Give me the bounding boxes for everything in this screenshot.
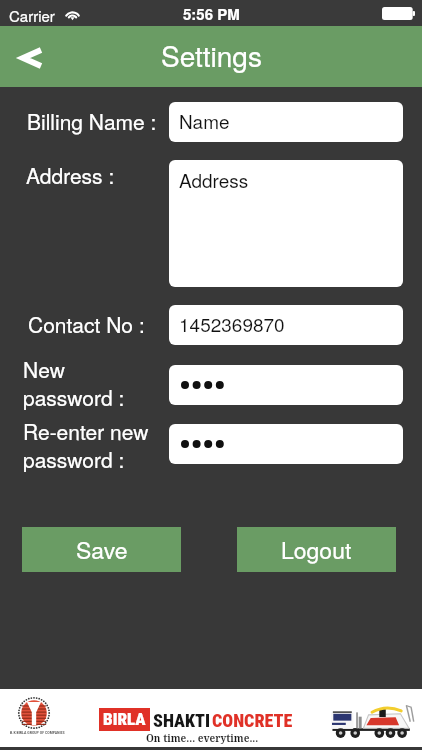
button[interactable]: 1452369870 <box>169 305 403 345</box>
staticText: 5:56 PM <box>183 3 240 24</box>
staticText: Contact No : <box>28 309 145 339</box>
staticText: BIRLA <box>103 709 146 729</box>
staticText: Logout <box>281 533 352 566</box>
button[interactable] <box>169 365 403 405</box>
staticText: Billing Name : <box>27 106 157 136</box>
button[interactable]: Save <box>22 527 181 572</box>
staticText: 1452369870 <box>179 310 285 337</box>
button[interactable] <box>169 424 403 464</box>
staticText: On time... everytime... <box>146 731 259 745</box>
staticText: Save <box>76 533 128 566</box>
button[interactable]: Name <box>169 102 403 142</box>
staticText: CONCRETE <box>212 710 293 731</box>
staticText: Name <box>179 107 230 134</box>
staticText: New password : <box>23 354 125 412</box>
button[interactable]: Address <box>169 160 403 287</box>
button[interactable]: Logout <box>237 527 396 572</box>
staticText: Re-enter new password : <box>23 416 149 474</box>
staticText: Settings <box>161 35 262 75</box>
staticText: SHAKTI <box>153 710 211 731</box>
staticText: Address <box>179 166 249 193</box>
button[interactable]: Back <box>0 34 48 79</box>
staticText: Carrier <box>9 5 55 26</box>
staticText: Address : <box>26 160 115 190</box>
staticText: B.K BIRLA GROUP OF COMPANIES <box>10 730 65 735</box>
